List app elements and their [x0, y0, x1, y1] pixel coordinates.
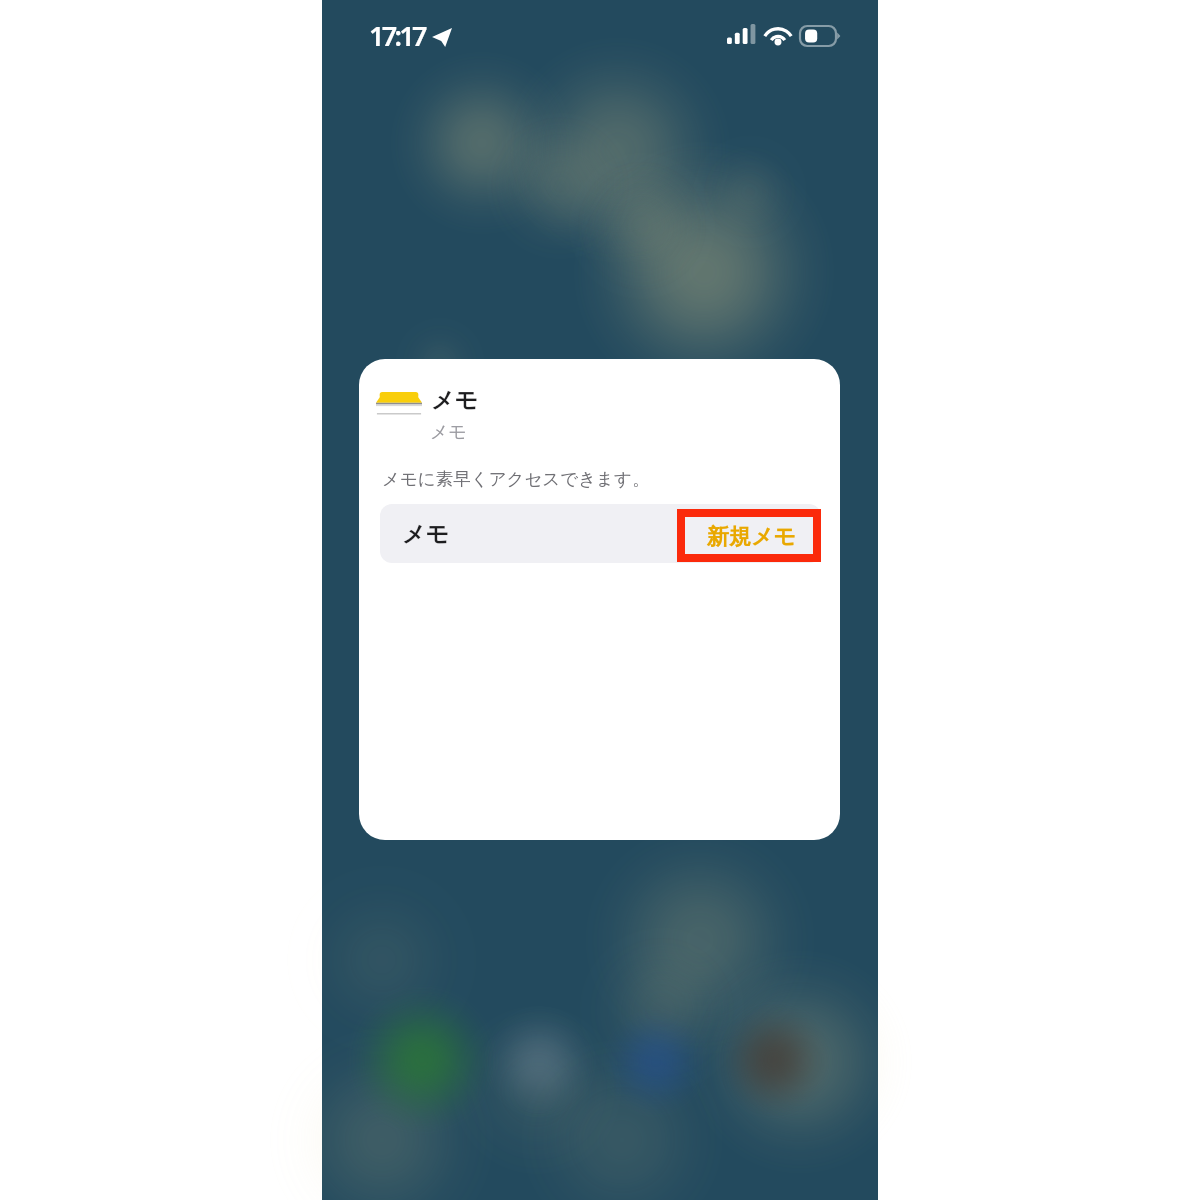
button[interactable]: メモ — [373, 379, 573, 445]
staticText: メモ — [431, 386, 479, 415]
staticText: メモ — [430, 421, 467, 444]
staticText: メモ — [402, 520, 450, 549]
button[interactable]: メモ — [380, 504, 821, 563]
staticText: 17:17 — [369, 17, 425, 54]
staticText: 新規メモ — [707, 523, 797, 551]
staticText: メモに素早くアクセスできます。 — [382, 468, 650, 490]
button[interactable]: 新規メモ — [677, 509, 821, 562]
